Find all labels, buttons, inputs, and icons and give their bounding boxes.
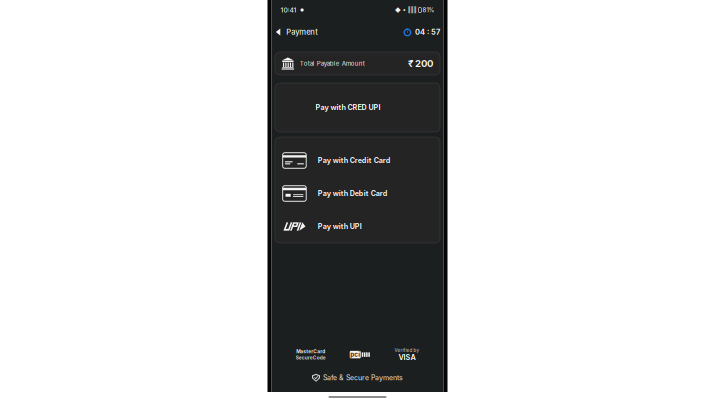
staticText: SecureCode: [296, 355, 326, 361]
staticText: pci: [350, 351, 360, 358]
staticText: ₹ 200: [408, 58, 433, 69]
staticText: Safe & Secure Payments: [323, 374, 403, 382]
staticText: Pay with Debit Card: [318, 189, 388, 198]
staticText: Pay with Credit Card: [318, 156, 391, 165]
staticText: 04 : 57: [415, 27, 440, 36]
button[interactable]: Pay with UPI: [275, 210, 440, 243]
staticText: Pay with UPI: [318, 222, 362, 231]
button[interactable]: Payment: [276, 22, 318, 42]
staticText: ◆ ▪ ‖‖‖: [395, 6, 417, 14]
staticText: MasterCard: [296, 349, 325, 354]
staticText: VISA: [398, 353, 415, 362]
staticText: Total Payable Amount: [300, 60, 365, 67]
staticText: 10:41: [280, 6, 296, 14]
button[interactable]: Pay with Credit Card: [275, 144, 440, 177]
staticText: Payment: [286, 27, 318, 37]
staticText: Pay with CRED UPI: [315, 103, 380, 112]
button[interactable]: Pay with CRED UPI: [275, 83, 440, 132]
button[interactable]: Pay with Debit Card: [275, 177, 440, 210]
staticText: Verified by: [394, 347, 419, 353]
staticText: 81%: [422, 6, 434, 14]
